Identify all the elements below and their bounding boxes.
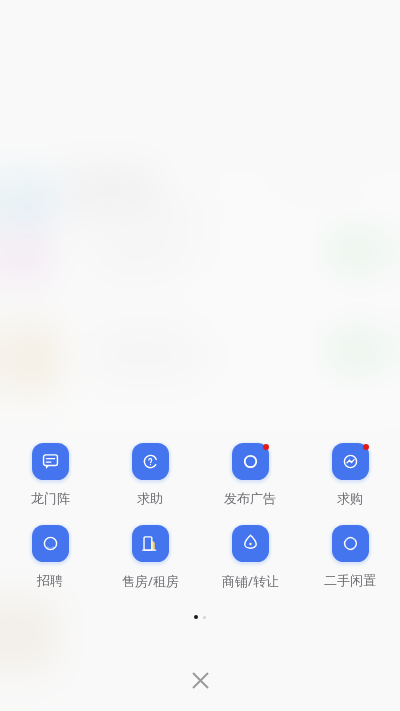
- button[interactable]: 求助: [100, 433, 200, 506]
- staticText: 求助: [137, 490, 163, 506]
- staticText: 二手闲置: [324, 572, 376, 588]
- staticText: 售房/租房: [122, 572, 179, 590]
- button[interactable]: 二手闲置: [300, 515, 400, 588]
- button[interactable]: Close: [180, 660, 220, 700]
- button[interactable]: 发布广告: [200, 433, 300, 506]
- button[interactable]: 龙门阵: [0, 433, 100, 506]
- button[interactable]: 求购: [300, 433, 400, 506]
- button[interactable]: 售房/租房: [100, 515, 200, 590]
- button[interactable]: Page 1: [194, 615, 198, 619]
- staticText: 求购: [337, 490, 363, 506]
- button[interactable]: Page 2: [203, 616, 206, 619]
- button[interactable]: 招聘: [0, 515, 100, 588]
- staticText: 招聘: [37, 572, 63, 588]
- button[interactable]: 商铺/转让: [200, 515, 300, 590]
- staticText: 商铺/转让: [222, 572, 279, 590]
- staticText: 发布广告: [224, 490, 276, 506]
- staticText: 龙门阵: [31, 490, 70, 506]
